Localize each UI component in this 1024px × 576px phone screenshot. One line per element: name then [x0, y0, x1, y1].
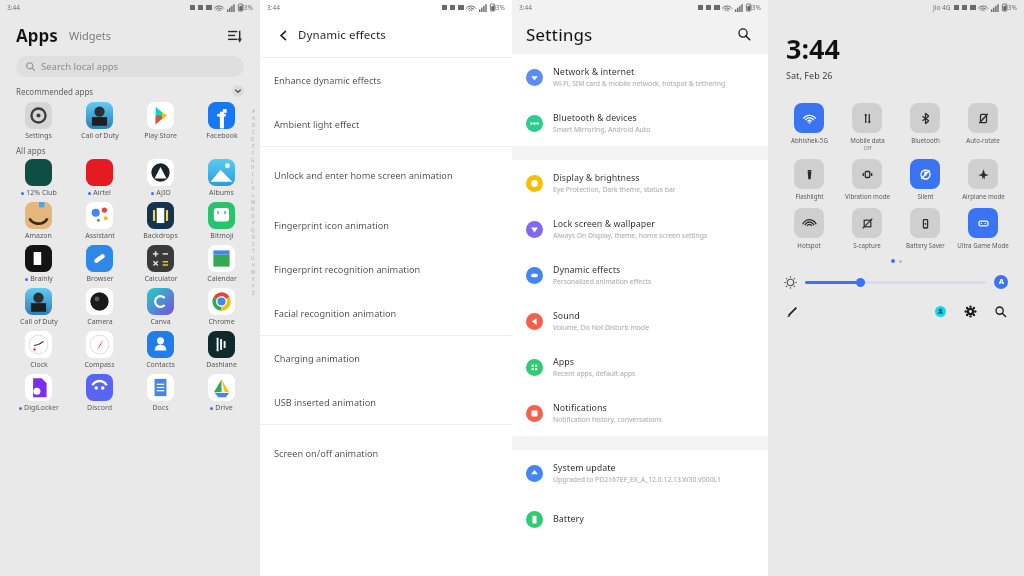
button[interactable]: Mobile data [838, 103, 896, 151]
button[interactable]: Docs [130, 373, 191, 414]
button[interactable]: Battery [512, 496, 768, 542]
staticText: G [251, 157, 255, 163]
button[interactable]: Airplane mode [954, 159, 1012, 200]
staticText: C [252, 129, 255, 135]
button[interactable]: Settings [8, 101, 69, 142]
button[interactable]: Backdrops [130, 201, 191, 242]
button[interactable]: Sort apps [224, 26, 244, 46]
staticText: Enhance dynamic effects [274, 74, 382, 87]
button[interactable]: Bluetooth & devices [512, 100, 768, 146]
button[interactable]: Calculator [130, 244, 191, 285]
button[interactable]: Dashlane [191, 330, 252, 371]
button[interactable]: System update [512, 450, 768, 496]
button[interactable]: Calendar [191, 244, 252, 285]
button[interactable]: Facial recognition animation [260, 291, 512, 335]
staticText: Bluetooth [911, 136, 940, 144]
button[interactable]: Display & brightness [512, 160, 768, 206]
staticText: Chrome [208, 317, 235, 327]
staticText: Q [251, 227, 255, 233]
button[interactable]: Canva [130, 287, 191, 328]
button[interactable]: Browser [69, 244, 130, 285]
button[interactable]: Battery Saver [896, 208, 954, 249]
button[interactable]: Brainly [8, 244, 69, 285]
button[interactable]: Sound [512, 298, 768, 344]
button[interactable]: Contacts [130, 330, 191, 371]
staticText: B [252, 122, 255, 128]
staticText: P [252, 220, 255, 226]
button[interactable]: Search settings [734, 24, 754, 44]
button[interactable]: Settings [962, 303, 978, 319]
button[interactable]: Vibration mode [838, 159, 896, 200]
button[interactable]: Play Store [130, 101, 191, 142]
button[interactable]: Albums [191, 158, 252, 199]
button[interactable]: Silent [896, 159, 954, 200]
button[interactable]: Screen on/off animation [260, 425, 512, 481]
staticText: Auto-rotate [966, 136, 1000, 144]
button[interactable]: Facebook [191, 101, 252, 142]
button[interactable]: USB inserted animation [260, 380, 512, 424]
button[interactable]: Auto brightness [994, 275, 1008, 289]
button[interactable]: Flashlight [780, 159, 838, 200]
button[interactable]: Ultra Game Mode [954, 208, 1012, 249]
button[interactable]: Auto-rotate [954, 103, 1012, 144]
staticText: K [252, 185, 255, 191]
staticText: Drive [215, 403, 233, 413]
button[interactable]: DigiLocker [8, 373, 69, 414]
button[interactable]: Lock screen & wallpaper [512, 206, 768, 252]
button[interactable]: Apps [16, 24, 58, 47]
staticText: Hotspot [797, 241, 821, 249]
button[interactable]: AJIO [130, 158, 191, 199]
staticText: Vibration mode [845, 192, 890, 200]
button[interactable]: Back [274, 26, 292, 44]
button[interactable]: Amazon [8, 201, 69, 242]
button[interactable]: Recommended apps [16, 85, 244, 97]
button[interactable]: Chrome [191, 287, 252, 328]
button[interactable]: Unlock and enter home screen animation [260, 147, 512, 203]
button[interactable]: Settings [526, 23, 593, 46]
button[interactable]: User [932, 303, 948, 319]
button[interactable]: Fingerprint icon animation [260, 203, 512, 247]
button[interactable]: Notifications [512, 390, 768, 436]
button[interactable]: Hotspot [780, 208, 838, 249]
button[interactable]: Search local apps [16, 56, 244, 77]
button[interactable]: Bluetooth [896, 103, 954, 144]
staticText: D [251, 136, 255, 142]
button[interactable]: Fingerprint recognition animation [260, 247, 512, 291]
button[interactable]: Widgets [69, 28, 112, 43]
button[interactable]: Ambient light effect [260, 102, 512, 146]
staticText: Charging animation [274, 352, 360, 365]
button[interactable]: Drive [191, 373, 252, 414]
staticText: Y [252, 283, 255, 289]
button[interactable]: Airtel [69, 158, 130, 199]
button[interactable]: Compass [69, 330, 130, 371]
button[interactable] [805, 276, 986, 288]
button[interactable]: Call of Duty [69, 101, 130, 142]
button[interactable]: S-capture [838, 208, 896, 249]
staticText: S [252, 241, 255, 247]
button[interactable]: Dynamic effects [512, 252, 768, 298]
staticText: 3:44 [786, 30, 840, 67]
staticText: Recommended apps [16, 86, 94, 97]
button[interactable]: Abhishek-5G [780, 103, 838, 144]
staticText: Dashlane [206, 360, 237, 370]
button[interactable]: Clock [8, 330, 69, 371]
staticText: Notifications [553, 402, 607, 414]
button[interactable]: Discord [69, 373, 130, 414]
button[interactable]: Camera [69, 287, 130, 328]
button[interactable]: Apps [512, 344, 768, 390]
button[interactable]: Bitmoji [191, 201, 252, 242]
button[interactable]: Assistant [69, 201, 130, 242]
staticText: Settings [25, 131, 52, 141]
staticText: E [252, 143, 255, 149]
button[interactable]: Network & internet [512, 54, 768, 100]
button[interactable]: Search [992, 303, 1008, 319]
button[interactable]: Call of Duty [8, 287, 69, 328]
button[interactable]: Edit tiles [784, 303, 800, 319]
staticText: Battery [553, 513, 584, 525]
button[interactable]: Charging animation [260, 336, 512, 380]
button[interactable]: Enhance dynamic effects [260, 58, 512, 102]
staticText: Silent [917, 192, 934, 200]
staticText: Search local apps [41, 60, 119, 73]
staticText: Facial recognition animation [274, 307, 397, 320]
button[interactable]: 12% Club [8, 158, 69, 199]
